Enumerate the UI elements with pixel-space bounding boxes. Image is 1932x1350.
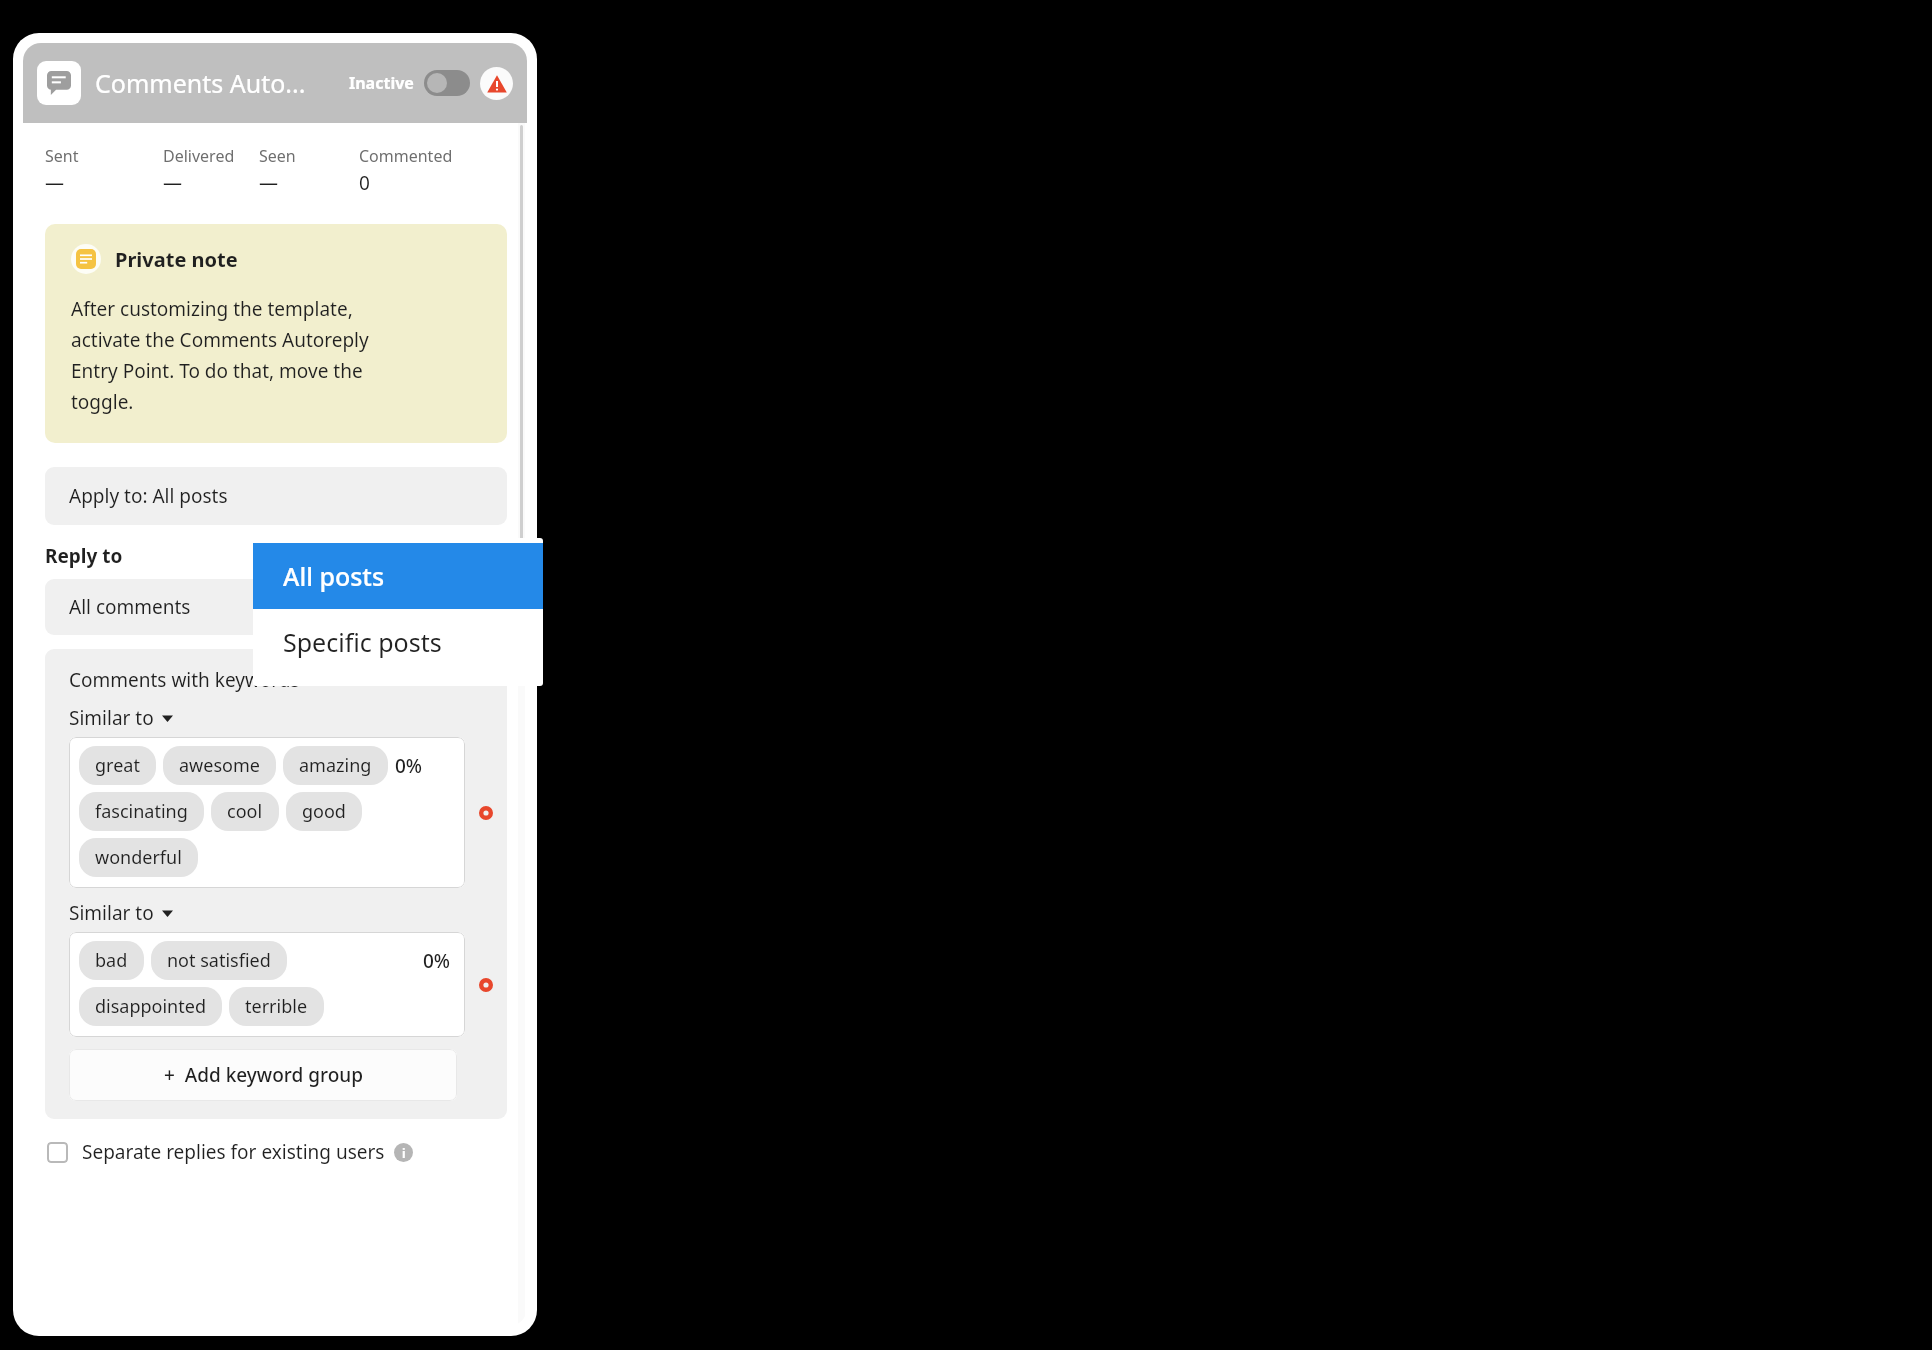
staticText: All comments [69, 594, 191, 620]
button[interactable]: amazing [283, 746, 388, 785]
button[interactable]: wonderful [79, 838, 198, 877]
staticText: wonderful [95, 845, 182, 870]
staticText: Sent [45, 145, 79, 167]
staticText: amazing [299, 753, 372, 778]
button[interactable]: Similar to [69, 705, 173, 731]
staticText: Similar to [69, 705, 154, 731]
staticText: cool [227, 799, 263, 824]
button[interactable]: Apply to: All posts [45, 467, 507, 525]
button[interactable]: not satisfied [151, 941, 287, 980]
button[interactable]: Specific posts [253, 609, 543, 675]
staticText: fascinating [95, 799, 188, 824]
button[interactable]: awesome [163, 746, 276, 785]
staticText: 0% [423, 594, 451, 620]
staticText: Commented [359, 145, 453, 167]
staticText: Specific posts [283, 625, 442, 659]
staticText: Comments Auto... [95, 66, 306, 100]
staticText: — [259, 170, 279, 196]
staticText: + Add keyword group [164, 1062, 363, 1088]
staticText: great [95, 753, 140, 778]
staticText: Comments with keywords [69, 667, 300, 693]
button[interactable]: disappointed [79, 987, 222, 1026]
staticText: awesome [179, 753, 260, 778]
button[interactable]: All comments [45, 579, 507, 635]
staticText: not satisfied [167, 948, 271, 973]
staticText: Inactive [349, 72, 414, 94]
button[interactable]: Separate replies for existing users [45, 1133, 507, 1165]
button[interactable]: cool [211, 792, 279, 831]
staticText: good [302, 799, 346, 824]
button[interactable]: + Add keyword group [69, 1049, 457, 1101]
button[interactable]: Warning [480, 67, 513, 100]
staticText: 0 [359, 170, 370, 196]
button[interactable]: bad [79, 941, 144, 980]
staticText: Separate replies for existing users [82, 1139, 385, 1165]
staticText: — [163, 170, 183, 196]
button[interactable]: Activate toggle [424, 70, 470, 96]
staticText: disappointed [95, 994, 206, 1019]
staticText: Similar to [69, 900, 154, 926]
staticText: Seen [259, 145, 296, 167]
button[interactable]: Similar to [69, 900, 173, 926]
staticText: Apply to: All posts [69, 483, 228, 509]
staticText: — [45, 170, 65, 196]
staticText: Reply to [45, 543, 123, 569]
staticText: bad [95, 948, 128, 973]
staticText: 0% [423, 948, 451, 974]
button[interactable]: All posts [253, 543, 543, 609]
button[interactable]: Comments [37, 61, 81, 105]
staticText: terrible [245, 994, 308, 1019]
staticText: Private note [115, 246, 238, 273]
staticText: Delivered [163, 145, 235, 167]
button[interactable]: fascinating [79, 792, 204, 831]
staticText: i [402, 1145, 406, 1161]
button[interactable]: great [79, 746, 156, 785]
button[interactable]: good [286, 792, 362, 831]
button[interactable]: terrible [229, 987, 324, 1026]
staticText: After customizing the template, activate… [71, 296, 369, 415]
staticText: All posts [283, 559, 385, 593]
staticText: 0% [395, 753, 423, 779]
